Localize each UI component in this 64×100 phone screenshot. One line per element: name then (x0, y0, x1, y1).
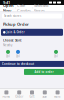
staticText: Lbl (54, 54, 58, 58)
button[interactable]: Open Now (2, 3, 15, 13)
staticText: Lbl (16, 54, 20, 58)
button[interactable]: More (51, 89, 64, 100)
staticText: Lbl (6, 54, 10, 58)
staticText: More (54, 95, 61, 98)
button[interactable]: Gift (26, 89, 38, 100)
button[interactable]: Cafe Candies (16, 3, 32, 13)
staticText: Search stores (4, 14, 21, 18)
staticText: Choose Store (3, 39, 22, 42)
staticText: Gift (29, 95, 34, 98)
staticText: Selected Stores (34, 3, 48, 13)
staticText: Scan (42, 95, 47, 98)
staticText: Join & Order (6, 30, 24, 34)
button[interactable]: Order (13, 89, 26, 100)
staticText: · (15, 5, 16, 11)
staticText: Nearby (3, 43, 12, 47)
staticText: Pickup Order (3, 21, 29, 27)
button[interactable]: Scan (38, 89, 51, 100)
button[interactable]: Add to order (24, 69, 64, 75)
staticText: 9:41 (3, 0, 10, 5)
button[interactable]: Selected Stores (33, 3, 49, 13)
button[interactable]: Join & Order (0, 27, 64, 36)
staticText: Add to order (34, 70, 53, 74)
staticText: Home (2, 95, 10, 98)
button[interactable]: Home (0, 89, 13, 100)
staticText: Continue to checkout (2, 62, 34, 66)
staticText: Cafe Candies (17, 3, 31, 13)
staticText: Open Now (3, 3, 14, 13)
staticText: · (32, 5, 33, 11)
button[interactable]: Continue to checkout (0, 58, 64, 67)
staticText: Order (15, 95, 23, 98)
